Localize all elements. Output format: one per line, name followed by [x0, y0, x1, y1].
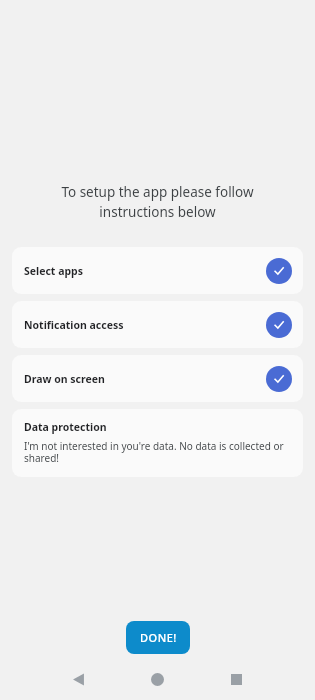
staticText: Select apps — [24, 264, 83, 278]
staticText: Draw on screen — [24, 372, 105, 386]
other: Completed — [266, 366, 292, 392]
other: Completed — [266, 258, 292, 284]
button[interactable]: Back — [62, 663, 94, 695]
button[interactable]: Recent apps — [220, 663, 252, 695]
button[interactable]: DONE! — [126, 621, 190, 654]
staticText: DONE! — [140, 630, 177, 645]
staticText: Data protection — [24, 420, 107, 434]
staticText: Notification access — [24, 318, 124, 332]
button[interactable]: Notification access — [12, 301, 303, 348]
staticText: To setup the app please follow instructi… — [20, 183, 295, 221]
other: Completed — [266, 312, 292, 338]
button[interactable]: Select apps — [12, 247, 303, 294]
button[interactable]: Home — [141, 663, 173, 695]
button[interactable]: Draw on screen — [12, 355, 303, 402]
staticText: I'm not interested in you're data. No da… — [24, 439, 291, 465]
button[interactable]: Data protection — [12, 409, 303, 477]
